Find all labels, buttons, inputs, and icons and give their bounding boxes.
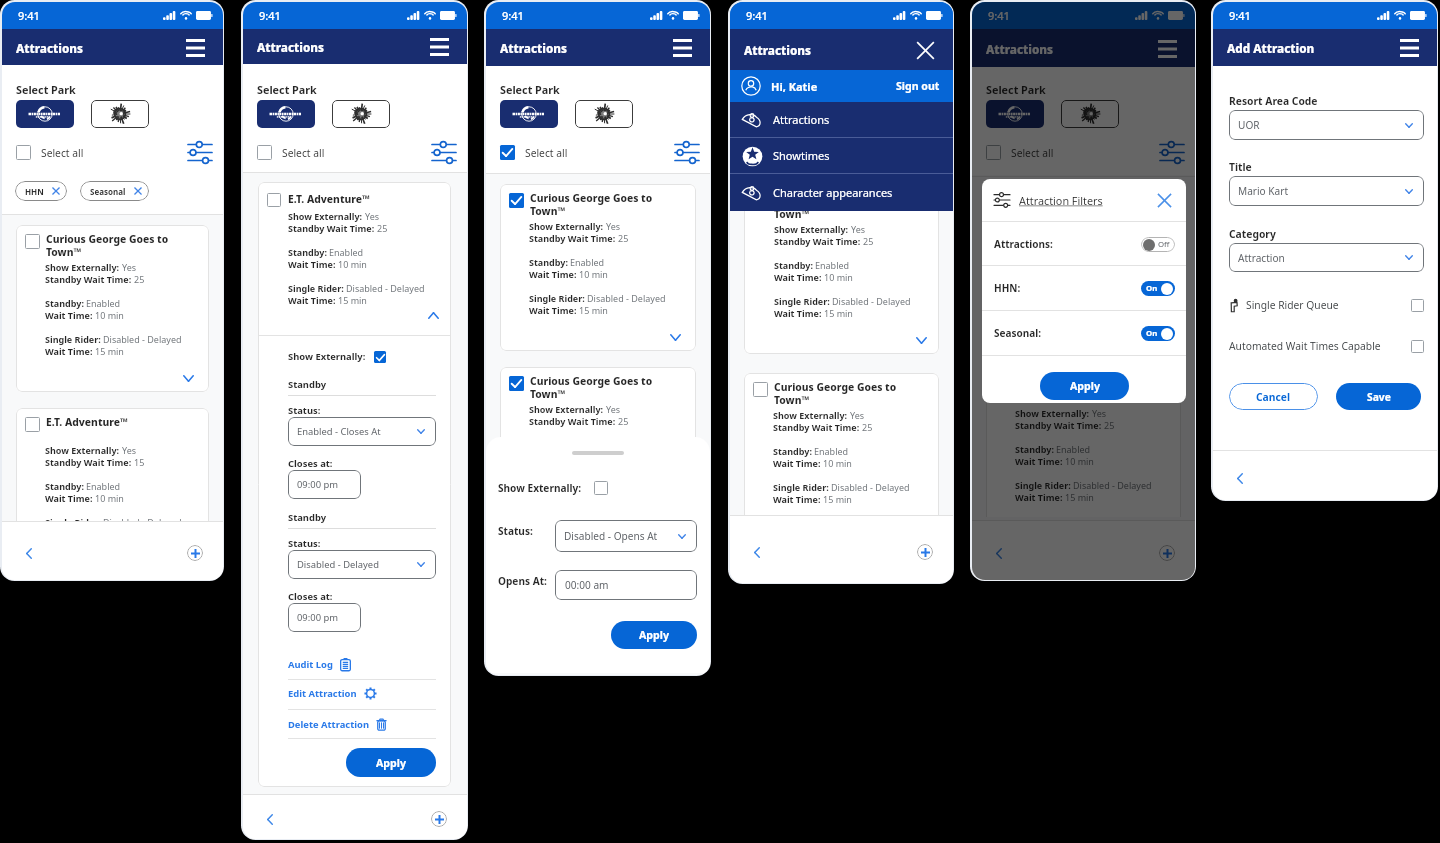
- button[interactable]: Attraction filters: [188, 142, 212, 163]
- button[interactable]: Back: [21, 545, 37, 561]
- button[interactable]: Add attraction: [187, 545, 203, 561]
- button[interactable]: Checkbox: [267, 193, 281, 207]
- button[interactable]: Add attraction: [1159, 545, 1175, 561]
- button[interactable]: Add attraction: [917, 544, 933, 560]
- button[interactable]: Checkbox: [986, 145, 1001, 160]
- button[interactable]: Universal Studios Florida park: [16, 100, 74, 128]
- button[interactable]: Checkbox: [744, 187, 939, 354]
- button[interactable]: Checkbox: [1411, 299, 1424, 312]
- button[interactable]: Open navigation menu: [669, 35, 695, 61]
- button[interactable]: Attraction filters: [675, 142, 699, 163]
- button[interactable]: Edit Attraction: [288, 687, 377, 700]
- button[interactable]: UOR: [1229, 110, 1424, 140]
- button[interactable]: Checkbox: [753, 196, 768, 211]
- button[interactable]: Apply: [346, 748, 436, 777]
- button[interactable]: Universal Studios Florida park: [986, 100, 1044, 128]
- staticText: Enabled: [1056, 260, 1091, 272]
- button[interactable]: Checkbox: [25, 234, 40, 249]
- button[interactable]: Expand card: [913, 332, 929, 348]
- button[interactable]: Attractions:: [982, 222, 1186, 266]
- button[interactable]: Attraction filters: [432, 142, 456, 163]
- button[interactable]: 09:00 pm: [288, 603, 361, 632]
- button[interactable]: Expand card: [1152, 333, 1168, 349]
- button[interactable]: Universal Studios Florida park: [500, 100, 558, 128]
- button[interactable]: Seasonal:: [982, 311, 1186, 355]
- button[interactable]: Islands of Adventure park: [91, 100, 149, 128]
- button[interactable]: Apply: [1040, 372, 1129, 400]
- button[interactable]: Open navigation menu: [1396, 35, 1422, 61]
- button[interactable]: Disabled - Delayed: [288, 550, 436, 579]
- button[interactable]: Islands of Adventure park: [575, 100, 633, 128]
- button[interactable]: Selected checkbox: [509, 193, 524, 208]
- button[interactable]: Open navigation menu: [1154, 36, 1180, 62]
- button[interactable]: Expand card: [180, 370, 196, 386]
- button[interactable]: 00:00 am: [555, 570, 697, 600]
- button[interactable]: Checkbox: [986, 188, 1181, 355]
- button[interactable]: Checkbox: [257, 145, 272, 160]
- button[interactable]: Checkbox: [753, 382, 768, 397]
- button[interactable]: Automated Wait Times Capable: [1229, 339, 1424, 353]
- button[interactable]: Toggle on: [1141, 281, 1175, 296]
- button[interactable]: Checkbox: [16, 145, 31, 160]
- button[interactable]: Hi, Katie: [730, 70, 953, 102]
- button[interactable]: Toggle on: [1141, 326, 1175, 341]
- button[interactable]: Back: [262, 811, 278, 827]
- button[interactable]: HHN: [15, 181, 67, 201]
- button[interactable]: Save: [1336, 383, 1421, 410]
- button[interactable]: Selected checkbox: [374, 351, 386, 363]
- button[interactable]: Selected checkbox: [509, 376, 524, 391]
- staticText: Resort Area Code: [1229, 94, 1318, 108]
- button[interactable]: Open navigation menu: [426, 34, 452, 60]
- button[interactable]: Collapse card: [425, 307, 441, 323]
- button[interactable]: Checkbox: [16, 225, 209, 392]
- button[interactable]: Cancel: [1229, 383, 1318, 410]
- button[interactable]: Mario Kart: [1229, 176, 1424, 206]
- button[interactable]: Checkbox: [986, 371, 1181, 517]
- button[interactable]: Disabled - Opens At: [555, 520, 697, 552]
- button[interactable]: Universal Studios Florida park: [257, 100, 315, 128]
- button[interactable]: Attraction: [1229, 243, 1424, 272]
- button[interactable]: Checkbox: [995, 197, 1010, 212]
- button[interactable]: Checkbox: [25, 417, 40, 432]
- button[interactable]: Selected checkbox: [500, 367, 696, 534]
- button[interactable]: Checkbox: [16, 145, 84, 160]
- button[interactable]: Checkbox: [1411, 340, 1424, 353]
- button[interactable]: Attraction filters: [1160, 142, 1184, 163]
- button[interactable]: Add attraction: [431, 811, 447, 827]
- staticText: 9:41: [502, 8, 524, 23]
- button[interactable]: Showtimes: [730, 138, 953, 173]
- button[interactable]: Expand card: [667, 329, 683, 345]
- button[interactable]: Back: [1232, 470, 1248, 486]
- button[interactable]: Character appearances: [730, 174, 953, 211]
- button[interactable]: Checkbox: [594, 481, 608, 495]
- button[interactable]: Close filters dialog: [1153, 189, 1175, 211]
- staticText: Standby:: [45, 480, 84, 492]
- button[interactable]: Checkbox: [257, 145, 325, 160]
- button[interactable]: Single Rider Queue: [1229, 298, 1424, 312]
- button[interactable]: Islands of Adventure park: [1061, 100, 1119, 128]
- button[interactable]: HHN:: [982, 266, 1186, 310]
- button[interactable]: Back: [991, 545, 1007, 561]
- button[interactable]: Checkbox: [744, 373, 939, 540]
- button[interactable]: Back: [749, 544, 765, 560]
- button[interactable]: Selected checkbox: [500, 145, 515, 160]
- staticText: 25: [863, 235, 874, 247]
- button[interactable]: Attractions: [730, 102, 953, 137]
- button[interactable]: Toggle off: [1141, 237, 1175, 252]
- button[interactable]: Close navigation menu: [912, 37, 938, 63]
- button[interactable]: 09:00 pm: [288, 470, 361, 499]
- button[interactable]: Show Externally:: [498, 481, 608, 495]
- button[interactable]: Islands of Adventure park: [332, 100, 390, 128]
- button[interactable]: Checkbox: [986, 145, 1054, 160]
- button[interactable]: Checkbox: [16, 408, 209, 575]
- button[interactable]: Open navigation menu: [182, 35, 208, 61]
- button[interactable]: Apply: [611, 621, 697, 649]
- button[interactable]: Enabled - Closes At: [288, 417, 436, 446]
- button[interactable]: Delete Attraction: [288, 718, 387, 731]
- button[interactable]: Seasonal: [80, 181, 149, 201]
- button[interactable]: Selected checkbox: [500, 184, 696, 351]
- button[interactable]: Audit Log: [288, 658, 351, 671]
- button[interactable]: Selected checkbox: [500, 145, 568, 160]
